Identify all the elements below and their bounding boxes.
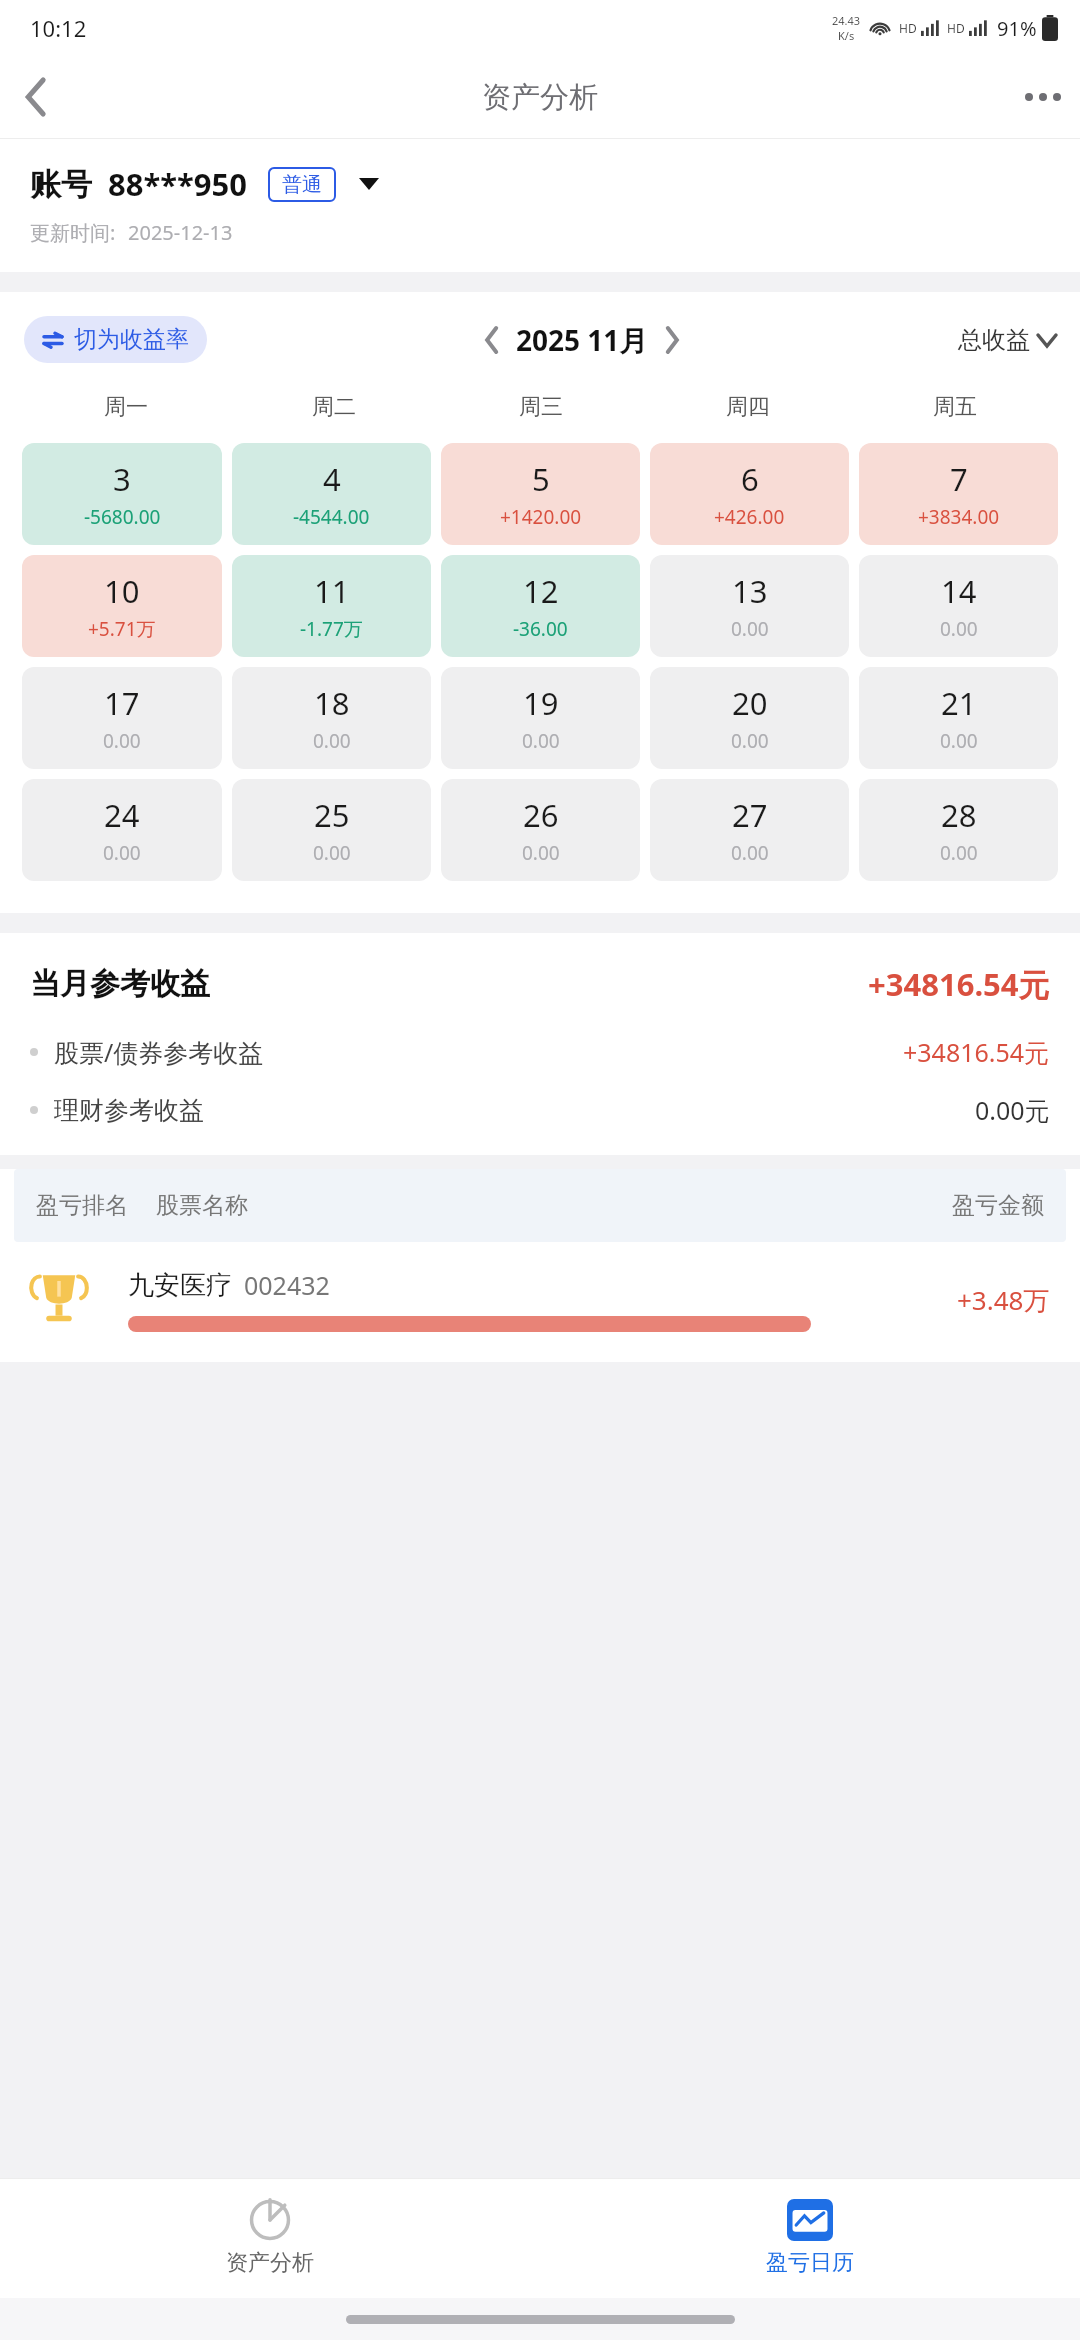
button[interactable]: 切为收益率 (24, 316, 207, 363)
staticText: 5 (532, 458, 550, 500)
staticText: 10 (104, 570, 140, 612)
button[interactable]: 10 (22, 555, 222, 657)
button[interactable]: Previous month (472, 320, 512, 360)
staticText: 股票名称 (156, 1191, 248, 1220)
button[interactable]: 17 (22, 667, 222, 769)
staticText: 资产分析 (482, 79, 598, 116)
staticText: 账号 (30, 165, 92, 204)
staticText: +34816.54元 (868, 963, 1050, 1005)
staticText: 盈亏金额 (952, 1191, 1044, 1220)
staticText: 0.00 (940, 616, 978, 642)
button[interactable]: 27 (650, 779, 849, 881)
button[interactable]: 26 (441, 779, 640, 881)
staticText: +3834.00 (918, 504, 1000, 530)
staticText: 24 (104, 794, 140, 836)
staticText: 总收益 (958, 325, 1030, 355)
staticText: 6 (741, 458, 759, 500)
button[interactable]: 21 (859, 667, 1058, 769)
staticText: 2025-12-13 (128, 219, 233, 246)
button[interactable]: 28 (859, 779, 1058, 881)
button[interactable]: Switch account (352, 167, 386, 201)
staticText: HD (899, 20, 917, 36)
staticText: 002432 (244, 1268, 330, 1302)
staticText: K/s (838, 28, 855, 43)
staticText: HD (947, 20, 965, 36)
staticText: 21 (941, 682, 977, 724)
button[interactable]: 资产分析 (0, 2178, 540, 2298)
staticText: -36.00 (513, 616, 568, 642)
button[interactable]: 11 (232, 555, 431, 657)
button[interactable]: Next month (652, 320, 692, 360)
button[interactable]: 九安医疗 (0, 1268, 1080, 1332)
staticText: 3 (113, 458, 131, 500)
staticText: 更新时间: (30, 219, 116, 246)
staticText: 0.00 (313, 840, 351, 866)
staticText: 0.00 (940, 840, 978, 866)
staticText: 0.00元 (975, 1093, 1050, 1127)
staticText: 0.00 (522, 728, 560, 754)
staticText: 0.00 (522, 840, 560, 866)
staticText: 普通 (282, 172, 322, 197)
button[interactable]: 总收益 (958, 325, 1056, 355)
staticText: 理财参考收益 (54, 1095, 204, 1126)
staticText: 0.00 (731, 616, 769, 642)
button[interactable]: 20 (650, 667, 849, 769)
staticText: 周二 (312, 393, 356, 421)
button[interactable]: 6 (650, 443, 849, 545)
button[interactable]: 18 (232, 667, 431, 769)
staticText: -1.77万 (300, 616, 363, 642)
staticText: 周五 (933, 393, 977, 421)
staticText: 12 (523, 570, 559, 612)
staticText: 27 (732, 794, 768, 836)
staticText: 13 (732, 570, 768, 612)
staticText: +1420.00 (500, 504, 582, 530)
staticText: 0.00 (103, 728, 141, 754)
staticText: 0.00 (103, 840, 141, 866)
staticText: +3.48万 (957, 1282, 1050, 1318)
staticText: 28 (941, 794, 977, 836)
staticText: 资产分析 (226, 2249, 314, 2277)
staticText: +34816.54元 (903, 1035, 1050, 1069)
staticText: 2025 11月 (516, 321, 648, 359)
staticText: 17 (104, 682, 140, 724)
staticText: 当月参考收益 (30, 965, 210, 1003)
staticText: 20 (732, 682, 768, 724)
staticText: +426.00 (714, 504, 785, 530)
staticText: +5.71万 (88, 616, 156, 642)
staticText: 周三 (519, 393, 563, 421)
staticText: 25 (314, 794, 350, 836)
button[interactable]: 3 (22, 443, 222, 545)
button[interactable]: 4 (232, 443, 431, 545)
staticText: 周四 (726, 393, 770, 421)
button[interactable]: Back (0, 60, 74, 134)
staticText: 盈亏排名 (36, 1191, 128, 1220)
button[interactable]: 13 (650, 555, 849, 657)
staticText: -4544.00 (293, 504, 370, 530)
staticText: 切为收益率 (74, 325, 189, 354)
staticText: 0.00 (940, 728, 978, 754)
staticText: 18 (314, 682, 350, 724)
staticText: 0.00 (313, 728, 351, 754)
button[interactable]: More options (1006, 60, 1080, 134)
staticText: 7 (950, 458, 968, 500)
staticText: 19 (523, 682, 559, 724)
button[interactable]: 普通 (268, 167, 336, 202)
button[interactable]: 24 (22, 779, 222, 881)
button[interactable]: 盈亏日历 (540, 2178, 1080, 2298)
button[interactable]: 25 (232, 779, 431, 881)
staticText: 24.43 (832, 13, 861, 28)
staticText: 14 (941, 570, 977, 612)
button[interactable]: 14 (859, 555, 1058, 657)
staticText: 盈亏日历 (766, 2249, 854, 2277)
staticText: 0.00 (731, 728, 769, 754)
staticText: 26 (523, 794, 559, 836)
staticText: 91% (997, 15, 1037, 42)
staticText: 4 (323, 458, 341, 500)
staticText: 11 (314, 570, 350, 612)
button[interactable]: 7 (859, 443, 1058, 545)
button[interactable]: 19 (441, 667, 640, 769)
button[interactable]: 5 (441, 443, 640, 545)
button[interactable]: 12 (441, 555, 640, 657)
staticText: 88***950 (108, 163, 248, 205)
staticText: 九安医疗 (128, 1269, 232, 1302)
